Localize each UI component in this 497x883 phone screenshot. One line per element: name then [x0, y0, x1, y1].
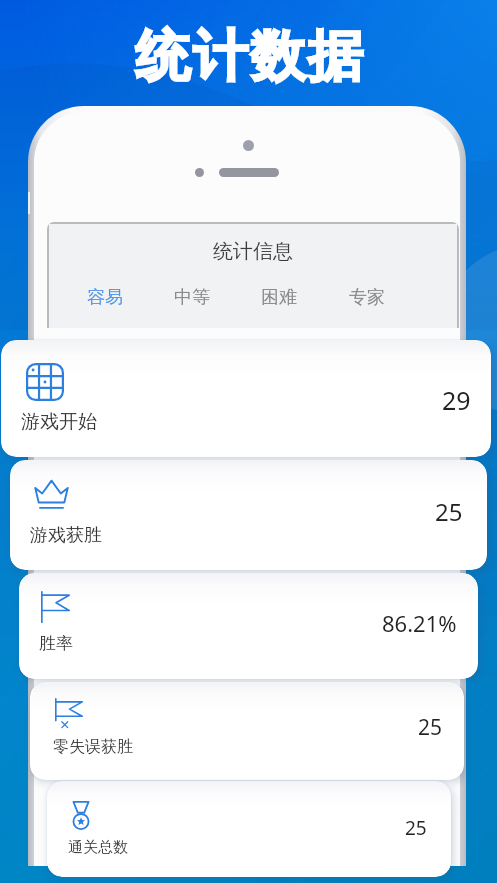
button[interactable]: 游戏开始: [1, 340, 491, 457]
button[interactable]: 游戏获胜: [10, 460, 487, 570]
button[interactable]: 困难: [235, 286, 323, 309]
staticText: 统计数据: [134, 22, 364, 91]
staticText: 容易: [87, 286, 123, 309]
staticText: 零失误获胜: [53, 737, 133, 757]
staticText: 25: [435, 495, 463, 528]
staticText: 29: [442, 383, 471, 417]
staticText: 中等: [174, 286, 210, 309]
button[interactable]: 中等: [148, 286, 235, 309]
button[interactable]: 通关总数: [47, 781, 451, 877]
button[interactable]: 容易: [61, 286, 148, 309]
staticText: 游戏获胜: [30, 524, 102, 547]
button[interactable]: 胜率: [19, 573, 478, 679]
button[interactable]: 专家: [323, 286, 411, 309]
staticText: 困难: [261, 286, 297, 309]
staticText: 专家: [349, 286, 385, 309]
staticText: 通关总数: [68, 838, 128, 857]
staticText: 统计信息: [213, 239, 293, 264]
staticText: 游戏开始: [21, 410, 97, 434]
staticText: 胜率: [39, 633, 73, 654]
staticText: 25: [405, 815, 427, 841]
staticText: 86.21%: [382, 608, 457, 638]
button[interactable]: 零失误获胜: [30, 682, 464, 780]
staticText: 25: [418, 713, 443, 742]
